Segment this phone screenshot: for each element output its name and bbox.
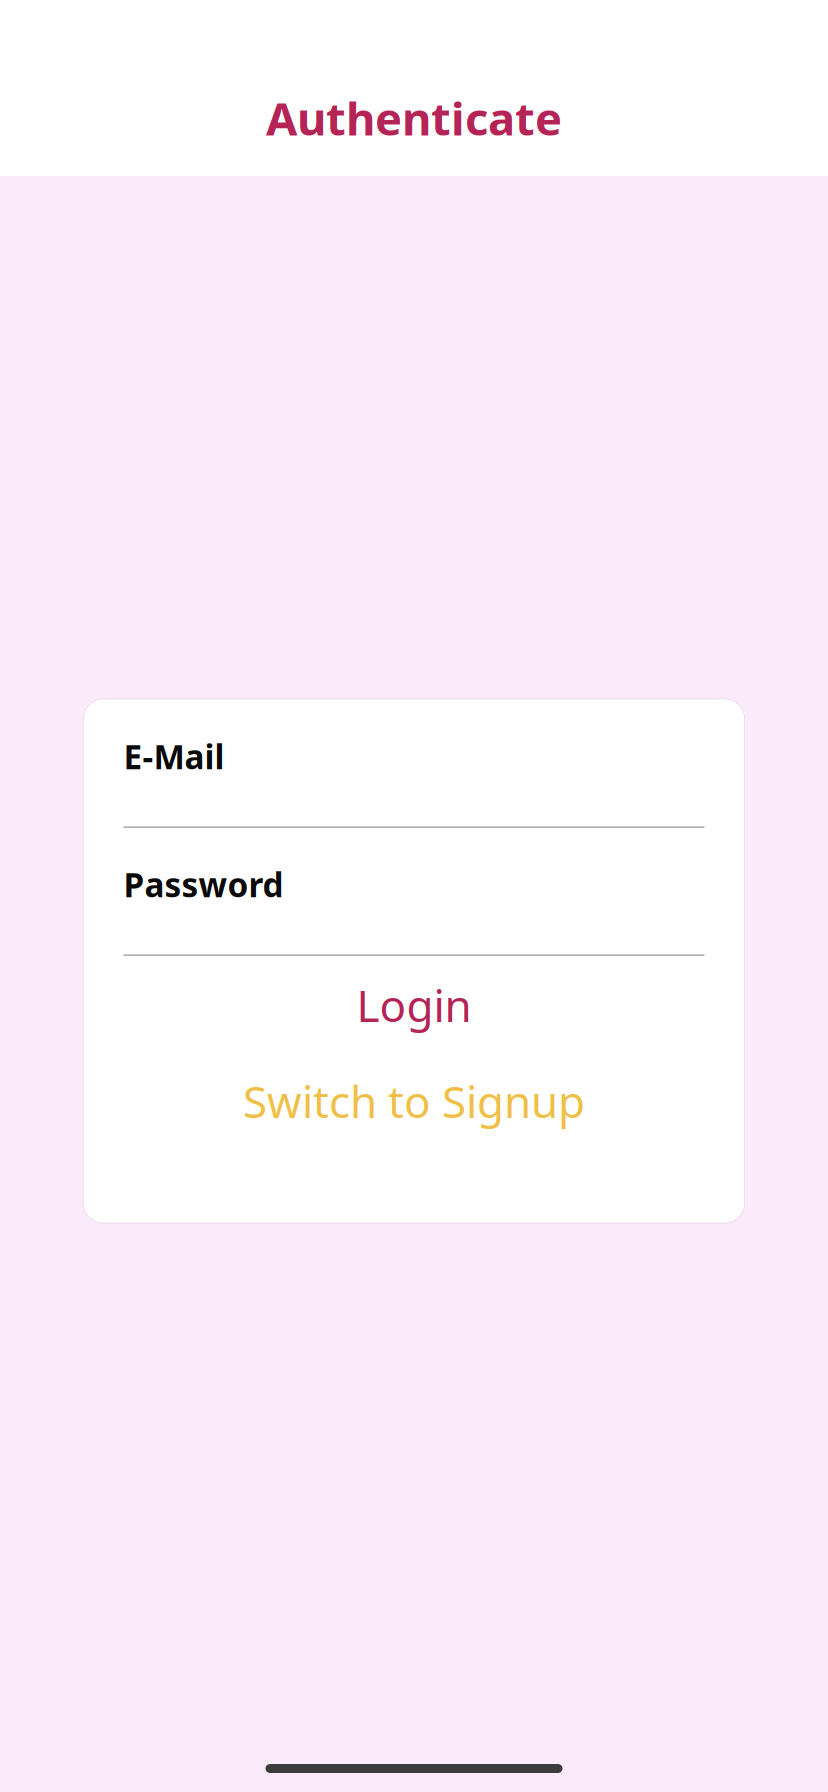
staticText: Switch to Signup <box>243 1072 585 1130</box>
button[interactable]: Login <box>83 975 744 1035</box>
staticText: Password <box>123 862 283 906</box>
staticText: E-Mail <box>123 734 224 778</box>
staticText: Authenticate <box>266 88 562 148</box>
staticText: Login <box>356 976 471 1034</box>
button[interactable]: Switch to Signup <box>83 1071 744 1131</box>
